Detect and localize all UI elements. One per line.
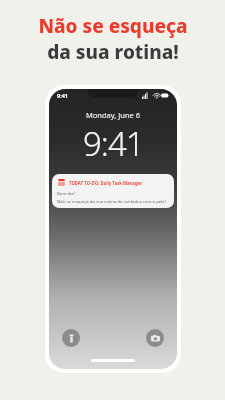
staticText: Não se esqueça (38, 13, 188, 39)
staticText: da sua rotina! (47, 39, 179, 65)
staticText: Bom dia! (57, 190, 75, 196)
staticText: Monday, June 6 (86, 110, 141, 120)
staticText: 9:41 (57, 92, 68, 99)
button[interactable]: Camera (146, 329, 164, 347)
staticText: 9:41 (83, 121, 144, 166)
button[interactable]: Flashlight (62, 329, 80, 347)
button[interactable]: TODAY TO-DO: Daily Task Manager (52, 174, 174, 208)
staticText: Não se esqueça da sua rotina de cuidados… (57, 198, 166, 204)
staticText: TODAY TO-DO: Daily Task Manager (69, 180, 143, 186)
